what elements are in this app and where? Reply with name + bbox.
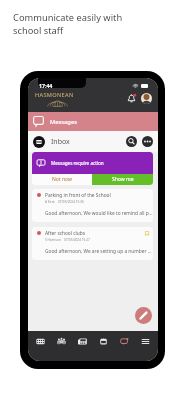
staticText: Parking in front of the School [45,192,111,199]
button[interactable]: Parking in front of the School [32,189,153,222]
button[interactable]: Compose message [135,307,152,324]
staticText: 07/05/2024 15:36 [58,200,84,204]
staticText: Good afternoon, We would like to remind … [45,210,153,217]
button[interactable]: Notifications [126,93,137,104]
staticText: A Kent [45,200,55,204]
staticText: 07/05/2024 15:27 [64,238,90,242]
button[interactable]: Show me [92,174,153,185]
button[interactable]: Not now [32,174,92,185]
button[interactable]: Profile [141,93,152,104]
staticText: Inbox [51,137,70,147]
staticText: Not now [52,176,72,183]
button[interactable]: More options [142,136,153,147]
staticText: Show me [112,176,134,183]
button[interactable]: After school clubs [32,227,153,260]
staticText: Messages require action [51,160,104,166]
button[interactable]: News [74,331,91,351]
staticText: After school clubs [45,230,85,237]
staticText: S Harrison [45,238,61,242]
staticText: Communicate easily with school staff [13,11,123,36]
button[interactable]: Menu [137,331,154,351]
staticText: Messages [50,118,77,126]
button[interactable]: Calendar [95,331,112,351]
button[interactable]: Staff [53,331,70,351]
button[interactable]: Dashboard [32,331,49,351]
staticText: 17:44 [39,82,53,89]
staticText: HASMONEAN [35,91,74,99]
staticText: Good afternoon, We are setting up a numb… [45,248,152,255]
button[interactable]: Search [126,136,137,147]
button[interactable]: Messages [116,331,133,351]
button[interactable]: Messages require action [32,152,153,174]
